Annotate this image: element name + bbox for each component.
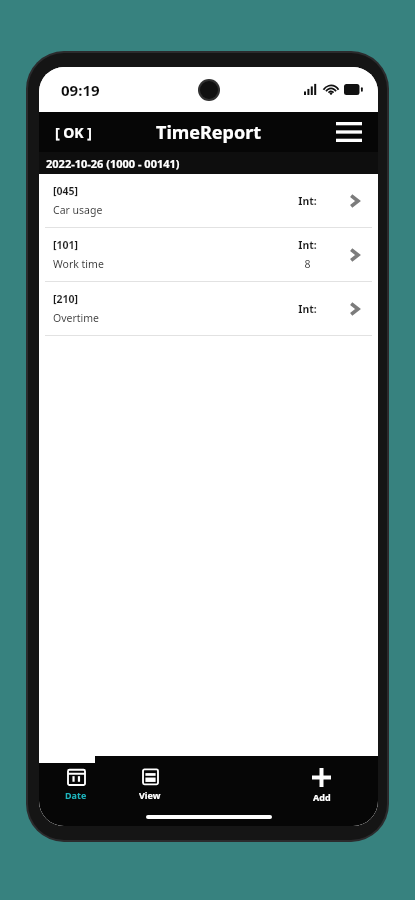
staticText: View — [139, 789, 161, 801]
button[interactable]: Menu — [328, 114, 370, 150]
staticText: Int: — [298, 302, 317, 316]
button[interactable]: Add — [284, 765, 359, 806]
staticText: TimeReport — [156, 120, 262, 145]
staticText: [ OK ] — [55, 123, 92, 142]
staticText: 09:19 — [61, 80, 100, 100]
staticText: [101] — [53, 238, 78, 252]
staticText: Date — [65, 789, 87, 801]
button[interactable]: [ OK ] — [45, 117, 102, 148]
staticText: Int: — [298, 194, 317, 208]
staticText: Overtime — [53, 311, 100, 325]
staticText: 2022-10-26 (1000 - 00141) — [46, 156, 180, 171]
staticText: Int: — [298, 238, 317, 252]
button[interactable]: [045] — [39, 174, 378, 227]
staticText: 8 — [304, 257, 311, 271]
button[interactable]: [210] — [39, 282, 378, 335]
button[interactable]: View — [113, 765, 187, 804]
staticText: Car usage — [53, 203, 103, 217]
button[interactable]: [101] — [39, 228, 378, 281]
staticText: [045] — [53, 184, 78, 198]
staticText: Add — [313, 791, 331, 803]
button[interactable]: Date — [39, 765, 113, 804]
staticText: [210] — [53, 292, 78, 306]
staticText: Work time — [53, 257, 104, 271]
